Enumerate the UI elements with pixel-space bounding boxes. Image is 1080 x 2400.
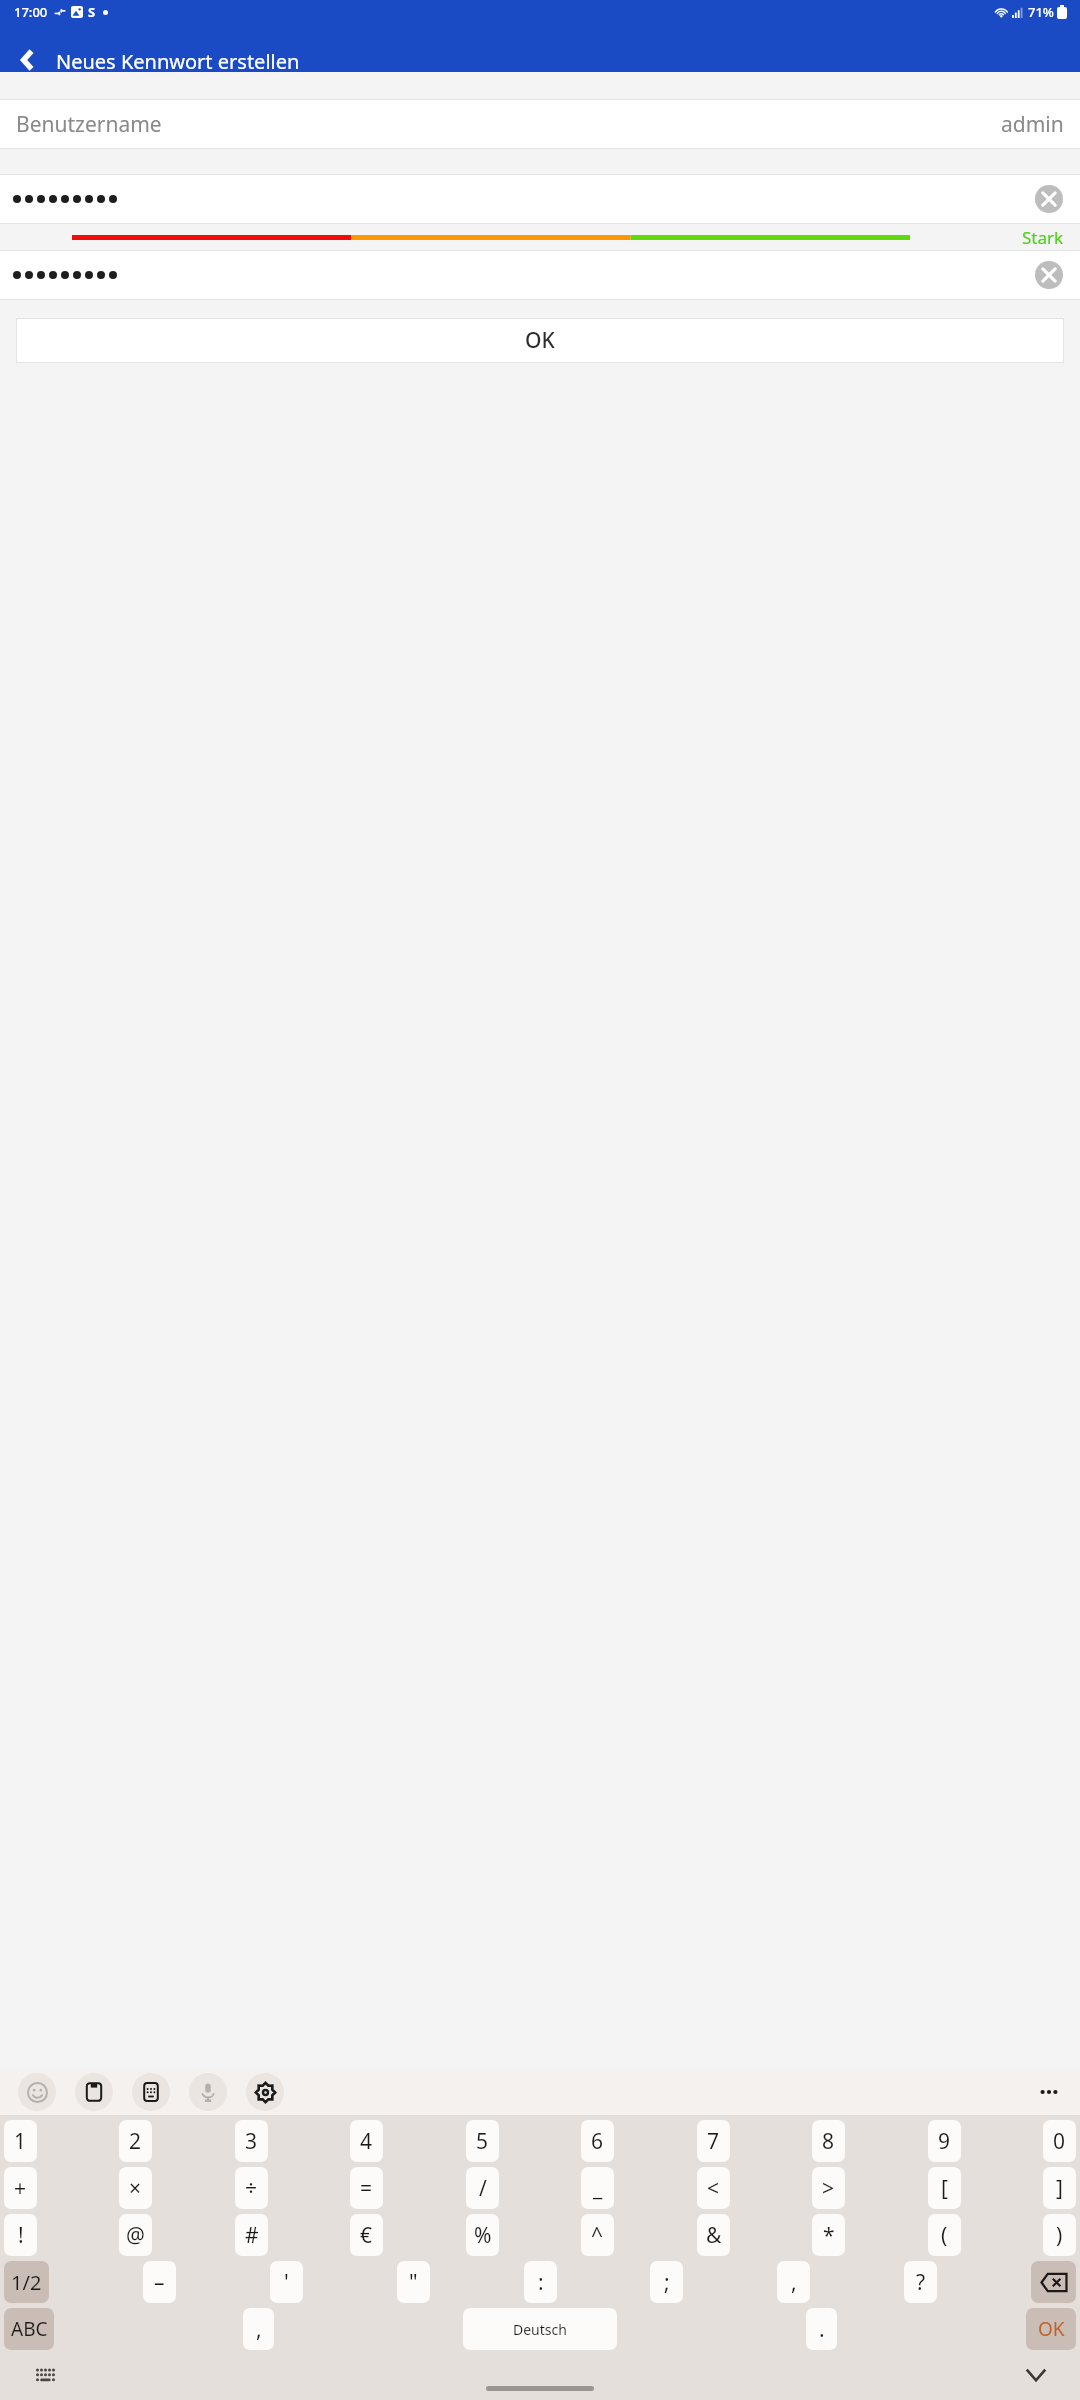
staticText: Neues Kennwort erstellen: [56, 48, 300, 72]
staticText: ': [284, 2268, 289, 2297]
staticText: 5: [476, 2127, 489, 2156]
button[interactable]: Tastaturmodus: [132, 2073, 170, 2111]
staticText: >: [822, 2174, 835, 2203]
staticText: 71%: [1028, 3, 1054, 21]
staticText: (: [941, 2221, 948, 2250]
staticText: Stark: [1022, 226, 1064, 249]
staticText: 9: [938, 2127, 951, 2156]
button[interactable]: Löschen: [0, 175, 1080, 223]
button[interactable]: 0: [1043, 2120, 1076, 2162]
staticText: *: [823, 2221, 835, 2250]
button[interactable]: OK: [17, 319, 1063, 362]
button[interactable]: –: [143, 2261, 176, 2303]
button[interactable]: Tastatur schließen: [1018, 2357, 1054, 2393]
staticText: #: [245, 2221, 259, 2250]
button[interactable]: ?: [904, 2261, 937, 2303]
button[interactable]: Löschen: [1032, 258, 1066, 292]
staticText: OK: [525, 326, 555, 355]
button[interactable]: @: [119, 2214, 152, 2256]
button[interactable]: (: [928, 2214, 961, 2256]
button[interactable]: 4: [350, 2120, 383, 2162]
staticText: –: [154, 2268, 165, 2297]
staticText: ÷: [245, 2174, 258, 2203]
button[interactable]: /: [466, 2167, 499, 2209]
staticText: ×: [129, 2174, 142, 2203]
button[interactable]: =: [350, 2167, 383, 2209]
staticText: ;: [664, 2268, 670, 2297]
button[interactable]: &: [697, 2214, 730, 2256]
button[interactable]: _: [581, 2167, 614, 2209]
button[interactable]: Löschen: [1032, 182, 1066, 216]
staticText: .: [819, 2315, 825, 2344]
staticText: ABC: [11, 2316, 48, 2342]
button[interactable]: Spracheingabe: [189, 2073, 227, 2111]
staticText: 6: [591, 2127, 604, 2156]
staticText: ): [1056, 2221, 1063, 2250]
button[interactable]: ^: [581, 2214, 614, 2256]
button[interactable]: #: [235, 2214, 268, 2256]
staticText: 7: [707, 2127, 720, 2156]
staticText: +: [14, 2174, 27, 2203]
button[interactable]: ": [397, 2261, 430, 2303]
button[interactable]: Benutzername: [0, 100, 1080, 148]
staticText: Deutsch: [513, 2320, 567, 2339]
staticText: 4: [360, 2127, 373, 2156]
button[interactable]: ABC: [4, 2308, 54, 2350]
staticText: 8: [822, 2127, 835, 2156]
button[interactable]: [: [928, 2167, 961, 2209]
staticText: &: [706, 2221, 722, 2250]
staticText: S: [88, 3, 96, 21]
button[interactable]: 3: [235, 2120, 268, 2162]
staticText: !: [18, 2221, 24, 2250]
button[interactable]: 5: [466, 2120, 499, 2162]
button[interactable]: 9: [928, 2120, 961, 2162]
staticText: <: [707, 2174, 720, 2203]
button[interactable]: 8: [812, 2120, 845, 2162]
staticText: 1: [14, 2127, 27, 2156]
staticText: Benutzername: [16, 110, 162, 139]
button[interactable]: ): [1043, 2214, 1076, 2256]
button[interactable]: ': [270, 2261, 303, 2303]
button[interactable]: :: [524, 2261, 557, 2303]
button[interactable]: +: [4, 2167, 37, 2209]
button[interactable]: ]: [1043, 2167, 1076, 2209]
button[interactable]: 2: [119, 2120, 152, 2162]
staticText: admin: [1001, 110, 1064, 139]
button[interactable]: ,: [243, 2308, 274, 2350]
button[interactable]: 1/2: [4, 2261, 49, 2303]
button[interactable]: ÷: [235, 2167, 268, 2209]
staticText: _: [593, 2174, 603, 2203]
button[interactable]: ,: [777, 2261, 810, 2303]
staticText: 2: [129, 2127, 142, 2156]
button[interactable]: >: [812, 2167, 845, 2209]
button[interactable]: Zurück: [0, 48, 56, 72]
staticText: @: [126, 2221, 145, 2250]
button[interactable]: Mehr: [1030, 2073, 1068, 2111]
button[interactable]: OK: [1026, 2308, 1076, 2350]
staticText: OK: [1038, 2316, 1065, 2342]
button[interactable]: 6: [581, 2120, 614, 2162]
button[interactable]: Tastatur wechseln: [28, 2358, 62, 2392]
button[interactable]: 7: [697, 2120, 730, 2162]
button[interactable]: 1: [4, 2120, 37, 2162]
button[interactable]: ;: [650, 2261, 683, 2303]
button[interactable]: Löschen: [0, 251, 1080, 299]
button[interactable]: Zwischenablage: [75, 2073, 113, 2111]
button[interactable]: !: [4, 2214, 37, 2256]
button[interactable]: %: [466, 2214, 499, 2256]
button[interactable]: .: [806, 2308, 837, 2350]
button[interactable]: ×: [119, 2167, 152, 2209]
button[interactable]: €: [350, 2214, 383, 2256]
button[interactable]: Deutsch: [463, 2308, 617, 2350]
staticText: /: [479, 2174, 487, 2203]
staticText: [: [941, 2174, 948, 2203]
button[interactable]: <: [697, 2167, 730, 2209]
staticText: 1/2: [11, 2269, 42, 2296]
button[interactable]: Emoji: [18, 2073, 56, 2111]
staticText: €: [360, 2221, 373, 2250]
button[interactable]: *: [812, 2214, 845, 2256]
staticText: %: [474, 2221, 492, 2250]
staticText: =: [360, 2174, 373, 2203]
button[interactable]: [1031, 2261, 1076, 2303]
button[interactable]: Einstellungen: [246, 2073, 284, 2111]
